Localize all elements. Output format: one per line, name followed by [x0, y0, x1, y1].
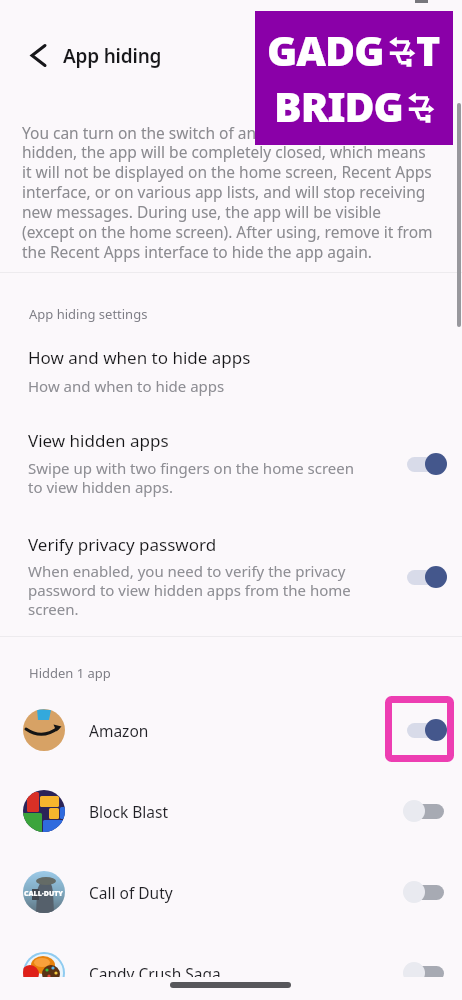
button[interactable]: Verify privacy password: [0, 524, 462, 632]
staticText: When enabled, you need to verify the pri…: [28, 561, 351, 620]
button[interactable]: [16, 36, 56, 76]
staticText: App hiding: [63, 43, 162, 69]
staticText: View hidden apps: [28, 429, 169, 452]
staticText: Verify privacy password: [28, 533, 217, 556]
staticText: Swipe up with two fingers on the home sc…: [28, 458, 355, 498]
staticText: Candy Crush Saga: [89, 963, 221, 984]
button[interactable]: Block Blast: [0, 771, 462, 852]
button[interactable]: [403, 566, 447, 588]
button[interactable]: View hidden apps: [0, 420, 462, 512]
button[interactable]: How and when to hide apps: [0, 336, 462, 408]
staticText: App hiding settings: [29, 305, 148, 323]
staticText: How and when to hide apps: [28, 346, 251, 369]
staticText: Block Blast: [89, 801, 168, 822]
button[interactable]: [403, 719, 447, 741]
staticText: GADG: [267, 22, 384, 78]
button[interactable]: Amazon: [0, 690, 462, 771]
staticText: You can turn on the switch of an app. Af…: [22, 122, 433, 263]
staticText: Hidden 1 app: [29, 664, 111, 682]
staticText: BRIDG: [274, 78, 403, 134]
staticText: CALL·DUTY: [24, 889, 64, 899]
staticText: Amazon: [89, 720, 149, 741]
button[interactable]: Candy Crush Saga: [0, 933, 462, 1000]
button[interactable]: [403, 962, 447, 984]
button[interactable]: [403, 800, 447, 822]
button[interactable]: CALL·DUTY: [0, 852, 462, 933]
button[interactable]: [403, 453, 447, 475]
staticText: Call of Duty: [89, 882, 173, 903]
button[interactable]: [403, 881, 447, 903]
staticText: T: [416, 22, 441, 78]
staticText: How and when to hide apps: [28, 376, 225, 396]
